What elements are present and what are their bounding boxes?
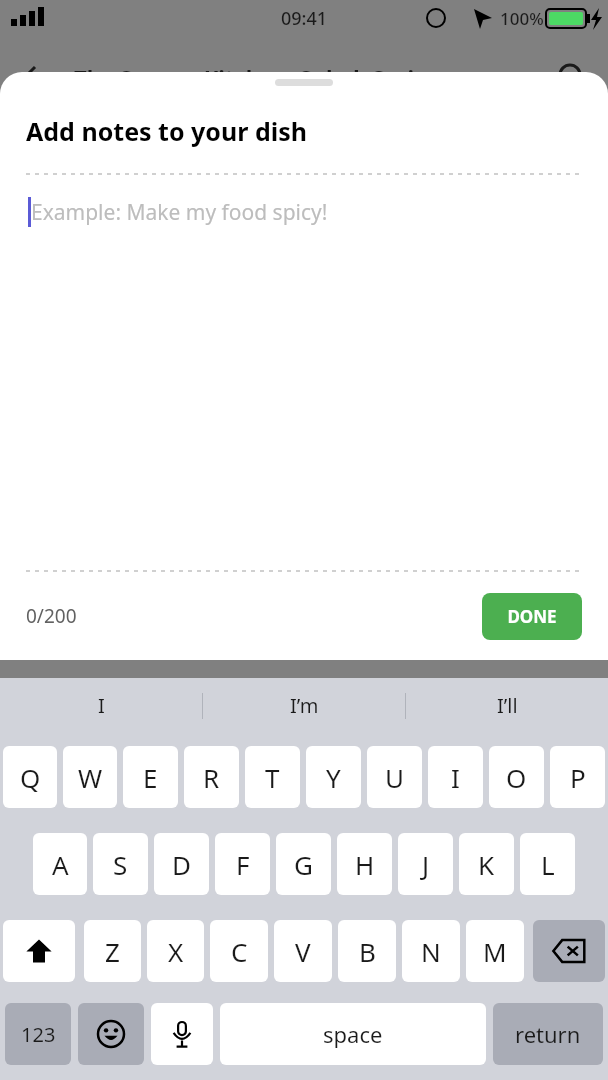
button[interactable]: Search <box>550 55 594 99</box>
staticText: L <box>541 847 555 882</box>
button[interactable]: D <box>154 833 209 895</box>
button[interactable]: T <box>245 746 300 808</box>
staticText: W <box>78 760 103 795</box>
button[interactable]: I <box>0 678 202 733</box>
staticText: R <box>203 760 220 795</box>
button[interactable]: Dictate <box>151 1003 213 1065</box>
button[interactable]: I’m <box>203 678 405 733</box>
staticText: space <box>323 1019 383 1049</box>
staticText: P <box>570 760 586 795</box>
staticText: return <box>515 1019 581 1049</box>
staticText: Add notes to your dish <box>26 114 307 148</box>
staticText: I’ll <box>497 692 518 719</box>
staticText: D <box>172 847 191 882</box>
button[interactable]: F <box>215 833 270 895</box>
staticText: I’m <box>290 692 319 719</box>
button[interactable]: G <box>276 833 331 895</box>
button[interactable]: L <box>520 833 575 895</box>
staticText: The Savage Kitchen, Subak Sari <box>74 62 415 92</box>
staticText: T <box>265 760 280 795</box>
button[interactable]: H <box>337 833 392 895</box>
button[interactable]: J <box>398 833 453 895</box>
staticText: 0/200 <box>26 603 77 629</box>
staticText: O <box>506 760 527 795</box>
staticText: A <box>52 847 69 882</box>
staticText: S <box>113 847 128 882</box>
button[interactable]: I’ll <box>406 678 608 733</box>
button[interactable]: Q <box>3 746 57 808</box>
button[interactable]: I <box>428 746 483 808</box>
staticText: E <box>143 760 158 795</box>
button[interactable]: U <box>367 746 422 808</box>
button[interactable]: V <box>274 920 332 982</box>
staticText: Z <box>105 934 120 969</box>
staticText: F <box>236 847 250 882</box>
staticText: G <box>294 847 313 882</box>
button[interactable]: space <box>220 1003 486 1065</box>
staticText: 123 <box>21 1021 56 1048</box>
button[interactable]: Emoji <box>78 1003 144 1065</box>
staticText: H <box>355 847 375 882</box>
button[interactable]: N <box>402 920 460 982</box>
button[interactable]: C <box>210 920 268 982</box>
staticText: Y <box>326 760 341 795</box>
button[interactable]: R <box>184 746 239 808</box>
staticText: Example: Make my food spicy! <box>31 198 328 227</box>
button[interactable]: X <box>147 920 204 982</box>
staticText: 09:41 <box>281 6 328 31</box>
button[interactable]: Shift <box>3 920 75 982</box>
staticText: M <box>483 934 507 969</box>
button[interactable]: Back <box>14 55 58 99</box>
staticText: K <box>478 847 495 882</box>
button[interactable]: A <box>33 833 87 895</box>
button[interactable]: return <box>493 1003 603 1065</box>
staticText: 100% <box>500 7 544 30</box>
button[interactable]: P <box>550 746 605 808</box>
button[interactable]: B <box>338 920 396 982</box>
staticText: U <box>385 760 405 795</box>
staticText: I <box>98 692 105 719</box>
staticText: B <box>359 934 376 969</box>
button[interactable]: S <box>93 833 148 895</box>
button[interactable]: O <box>489 746 544 808</box>
staticText: C <box>231 934 248 969</box>
staticText: V <box>295 934 311 969</box>
button[interactable]: DONE <box>482 593 582 640</box>
button[interactable]: 123 <box>5 1003 71 1065</box>
staticText: DONE <box>507 605 557 628</box>
staticText: I <box>451 760 460 795</box>
button[interactable]: E <box>123 746 178 808</box>
button[interactable]: K <box>459 833 514 895</box>
button[interactable]: Z <box>84 920 141 982</box>
button[interactable]: M <box>466 920 524 982</box>
staticText: J <box>422 847 430 882</box>
staticText: Q <box>20 760 41 795</box>
button[interactable]: Backspace <box>533 920 605 982</box>
button[interactable]: Y <box>306 746 361 808</box>
staticText: X <box>168 934 184 969</box>
button[interactable]: W <box>63 746 117 808</box>
staticText: N <box>421 934 441 969</box>
